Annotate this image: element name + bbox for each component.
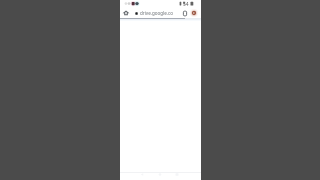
- button[interactable]: Recents: [173, 173, 181, 180]
- button[interactable]: Account: [190, 9, 198, 17]
- staticText: drive.google.com/file/d: [140, 10, 177, 16]
- button[interactable]: Home: [122, 9, 130, 17]
- button[interactable]: drive.google.com/file/d: [135, 9, 177, 18]
- button[interactable]: Tabs: [181, 9, 189, 17]
- staticText: 54: [183, 1, 189, 8]
